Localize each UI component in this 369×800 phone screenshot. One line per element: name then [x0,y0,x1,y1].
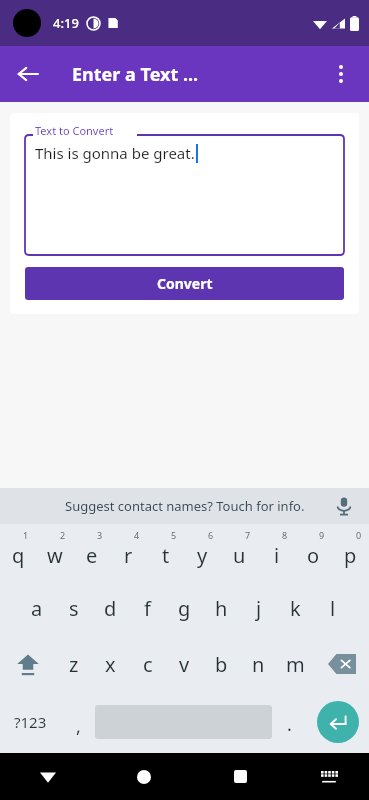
staticText: k [290,595,301,622]
staticText: c [143,651,153,678]
staticText: p [344,542,357,569]
staticText: i [274,542,280,569]
staticText: ?123 [14,712,47,732]
staticText: , [76,714,81,739]
staticText: w [47,542,63,569]
button[interactable]: 3 [73,524,110,580]
button[interactable]: 7 [221,524,258,580]
staticText: Text to Convert [35,123,114,138]
button[interactable]: m [277,636,314,692]
button[interactable]: j [240,580,277,636]
button[interactable]: Enter [317,701,359,743]
button[interactable]: f [129,580,166,636]
button[interactable]: h [203,580,240,636]
staticText: u [233,542,246,569]
staticText: d [104,595,117,622]
button[interactable]: 9 [295,524,332,580]
button[interactable]: 1 [0,524,36,580]
button[interactable]: g [166,580,203,636]
staticText: 2 [60,529,66,541]
staticText: Convert [157,274,213,293]
button[interactable]: d [92,580,129,636]
button[interactable]: z [55,636,92,692]
staticText: 9 [319,529,325,541]
button[interactable]: 2 [36,524,73,580]
button[interactable]: k [277,580,314,636]
staticText: x [105,651,116,678]
staticText: o [307,542,320,569]
button[interactable]: . [272,692,307,752]
staticText: g [178,595,191,622]
staticText: 8 [282,529,288,541]
staticText: 5 [171,529,177,541]
button[interactable]: Recents [192,753,288,800]
button[interactable]: Suggest contact names? Touch for info. [0,488,369,524]
staticText: 1 [23,529,29,541]
staticText: m [286,651,305,678]
staticText: t [162,542,170,569]
staticText: y [197,542,208,569]
button[interactable]: ?123 [0,692,61,752]
button[interactable]: Switch keyboard [288,753,369,800]
staticText: j [256,595,262,622]
button[interactable]: v [166,636,203,692]
button[interactable]: More options [317,50,365,98]
button[interactable]: s [55,580,92,636]
staticText: 4 [134,529,140,541]
button[interactable]: Convert [25,267,344,300]
staticText: 4:19 [53,14,79,32]
staticText: e [86,542,98,569]
staticText: v [179,651,190,678]
button[interactable]: 6 [184,524,221,580]
button[interactable]: Home [96,753,192,800]
button[interactable]: b [203,636,240,692]
staticText: b [215,651,228,678]
staticText: 0 [356,529,362,541]
button[interactable]: Back [0,753,96,800]
staticText: q [12,542,25,569]
button[interactable]: c [129,636,166,692]
staticText: r [124,542,133,569]
button[interactable]: Voice input [331,493,357,519]
staticText: Suggest contact names? Touch for info. [65,497,305,515]
button[interactable]: Text to Convert [25,127,344,255]
button[interactable]: 4 [110,524,147,580]
staticText: Enter a Text ... [72,62,199,87]
staticText: a [31,595,43,622]
staticText: h [215,595,228,622]
button[interactable]: l [314,580,351,636]
button[interactable]: Back [4,50,52,98]
button[interactable]: Backspace [314,636,369,692]
button[interactable]: 5 [147,524,184,580]
button[interactable]: 0 [332,524,369,580]
staticText: . [287,712,292,737]
staticText: l [330,595,336,622]
button[interactable]: a [18,580,55,636]
staticText: 3 [97,529,103,541]
button[interactable]: , [61,692,95,752]
staticText: z [69,651,79,678]
staticText: 6 [208,529,214,541]
staticText: 7 [245,529,251,541]
staticText: f [144,595,151,622]
button[interactable]: x [92,636,129,692]
button[interactable]: 8 [258,524,295,580]
button[interactable]: n [240,636,277,692]
button[interactable]: Shift [0,636,55,692]
staticText: n [252,651,265,678]
staticText: s [69,595,79,622]
staticText: This is gonna be great. [35,143,195,163]
